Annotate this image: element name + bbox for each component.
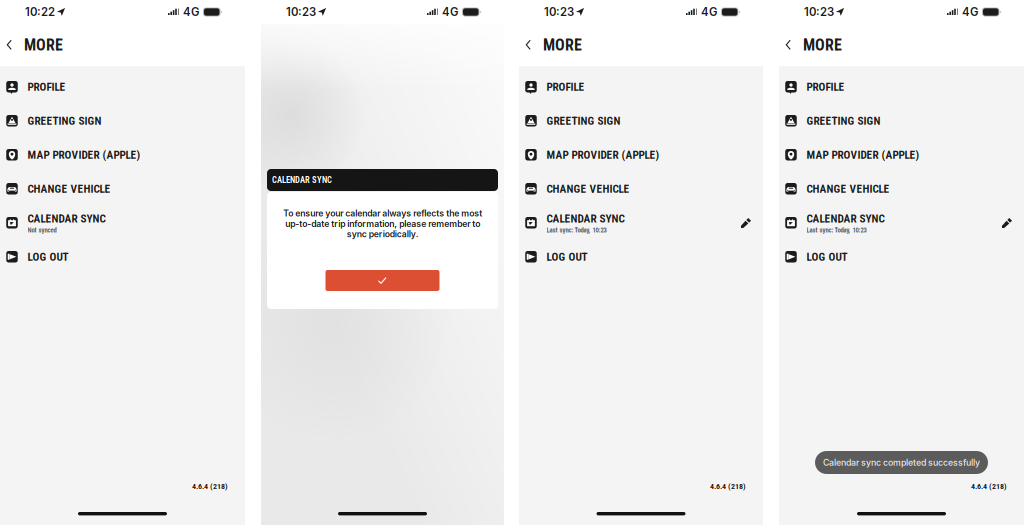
- button[interactable]: Edit calendar sync: [733, 210, 759, 236]
- staticText: 4G: [701, 5, 717, 19]
- button[interactable]: Back: [1, 24, 18, 66]
- staticText: GREETING SIGN: [546, 114, 620, 128]
- button[interactable]: Back: [520, 24, 537, 66]
- staticText: MORE: [803, 36, 842, 54]
- staticText: Not synced: [27, 226, 56, 234]
- staticText: GREETING SIGN: [806, 114, 880, 128]
- staticText: 10:22: [25, 5, 55, 19]
- staticText: 4G: [183, 5, 199, 19]
- button[interactable]: CALENDAR SYNC: [519, 206, 763, 240]
- button[interactable]: MAP PROVIDER (APPLE): [0, 138, 245, 172]
- button[interactable]: CHANGE VEHICLE: [779, 172, 1024, 206]
- button[interactable]: LOG OUT: [519, 240, 763, 274]
- button[interactable]: PROFILE: [519, 70, 763, 104]
- button[interactable]: LOG OUT: [0, 240, 245, 274]
- staticText: 10:23: [286, 5, 316, 19]
- staticText: 4.6.4 (218): [192, 482, 228, 491]
- staticText: CHANGE VEHICLE: [27, 182, 110, 196]
- button[interactable]: Confirm calendar sync: [325, 270, 439, 291]
- staticText: 4.6.4 (218): [971, 482, 1007, 491]
- staticText: 4G: [442, 5, 458, 19]
- button[interactable]: Edit calendar sync: [994, 210, 1020, 236]
- staticText: PROFILE: [546, 80, 584, 94]
- staticText: CALENDAR SYNC: [806, 212, 884, 225]
- button[interactable]: PROFILE: [779, 70, 1024, 104]
- button[interactable]: GREETING SIGN: [0, 104, 245, 138]
- staticText: GREETING SIGN: [27, 114, 101, 128]
- button[interactable]: GREETING SIGN: [779, 104, 1024, 138]
- staticText: 10:23: [544, 5, 574, 19]
- staticText: To ensure your calendar always reflects …: [283, 208, 482, 239]
- button[interactable]: MAP PROVIDER (APPLE): [519, 138, 763, 172]
- button[interactable]: CHANGE VEHICLE: [0, 172, 245, 206]
- button[interactable]: CHANGE VEHICLE: [519, 172, 763, 206]
- button[interactable]: GREETING SIGN: [519, 104, 763, 138]
- button[interactable]: PROFILE: [0, 70, 245, 104]
- staticText: 4.6.4 (218): [710, 482, 746, 491]
- staticText: CHANGE VEHICLE: [546, 182, 629, 196]
- staticText: Last sync: Today, 10:23: [546, 226, 606, 234]
- staticText: MAP PROVIDER (APPLE): [27, 148, 140, 162]
- staticText: LOG OUT: [27, 250, 68, 264]
- button[interactable]: CALENDAR SYNC: [0, 206, 245, 240]
- staticText: MORE: [24, 36, 63, 54]
- staticText: PROFILE: [27, 80, 65, 94]
- staticText: CALENDAR SYNC: [27, 212, 105, 225]
- staticText: LOG OUT: [546, 250, 587, 264]
- staticText: MORE: [543, 36, 582, 54]
- staticText: MAP PROVIDER (APPLE): [806, 148, 919, 162]
- staticText: CHANGE VEHICLE: [806, 182, 889, 196]
- staticText: MAP PROVIDER (APPLE): [546, 148, 659, 162]
- staticText: Last sync: Today, 10:23: [806, 226, 866, 234]
- button[interactable]: MAP PROVIDER (APPLE): [779, 138, 1024, 172]
- staticText: PROFILE: [806, 80, 844, 94]
- staticText: CALENDAR SYNC: [546, 212, 624, 225]
- staticText: Calendar sync completed successfully: [823, 457, 980, 468]
- staticText: 10:23: [804, 5, 834, 19]
- button[interactable]: Back: [780, 24, 797, 66]
- staticText: 4G: [962, 5, 978, 19]
- staticText: LOG OUT: [806, 250, 847, 264]
- button[interactable]: CALENDAR SYNC: [779, 206, 1024, 240]
- staticText: CALENDAR SYNC: [272, 175, 332, 185]
- button[interactable]: LOG OUT: [779, 240, 1024, 274]
